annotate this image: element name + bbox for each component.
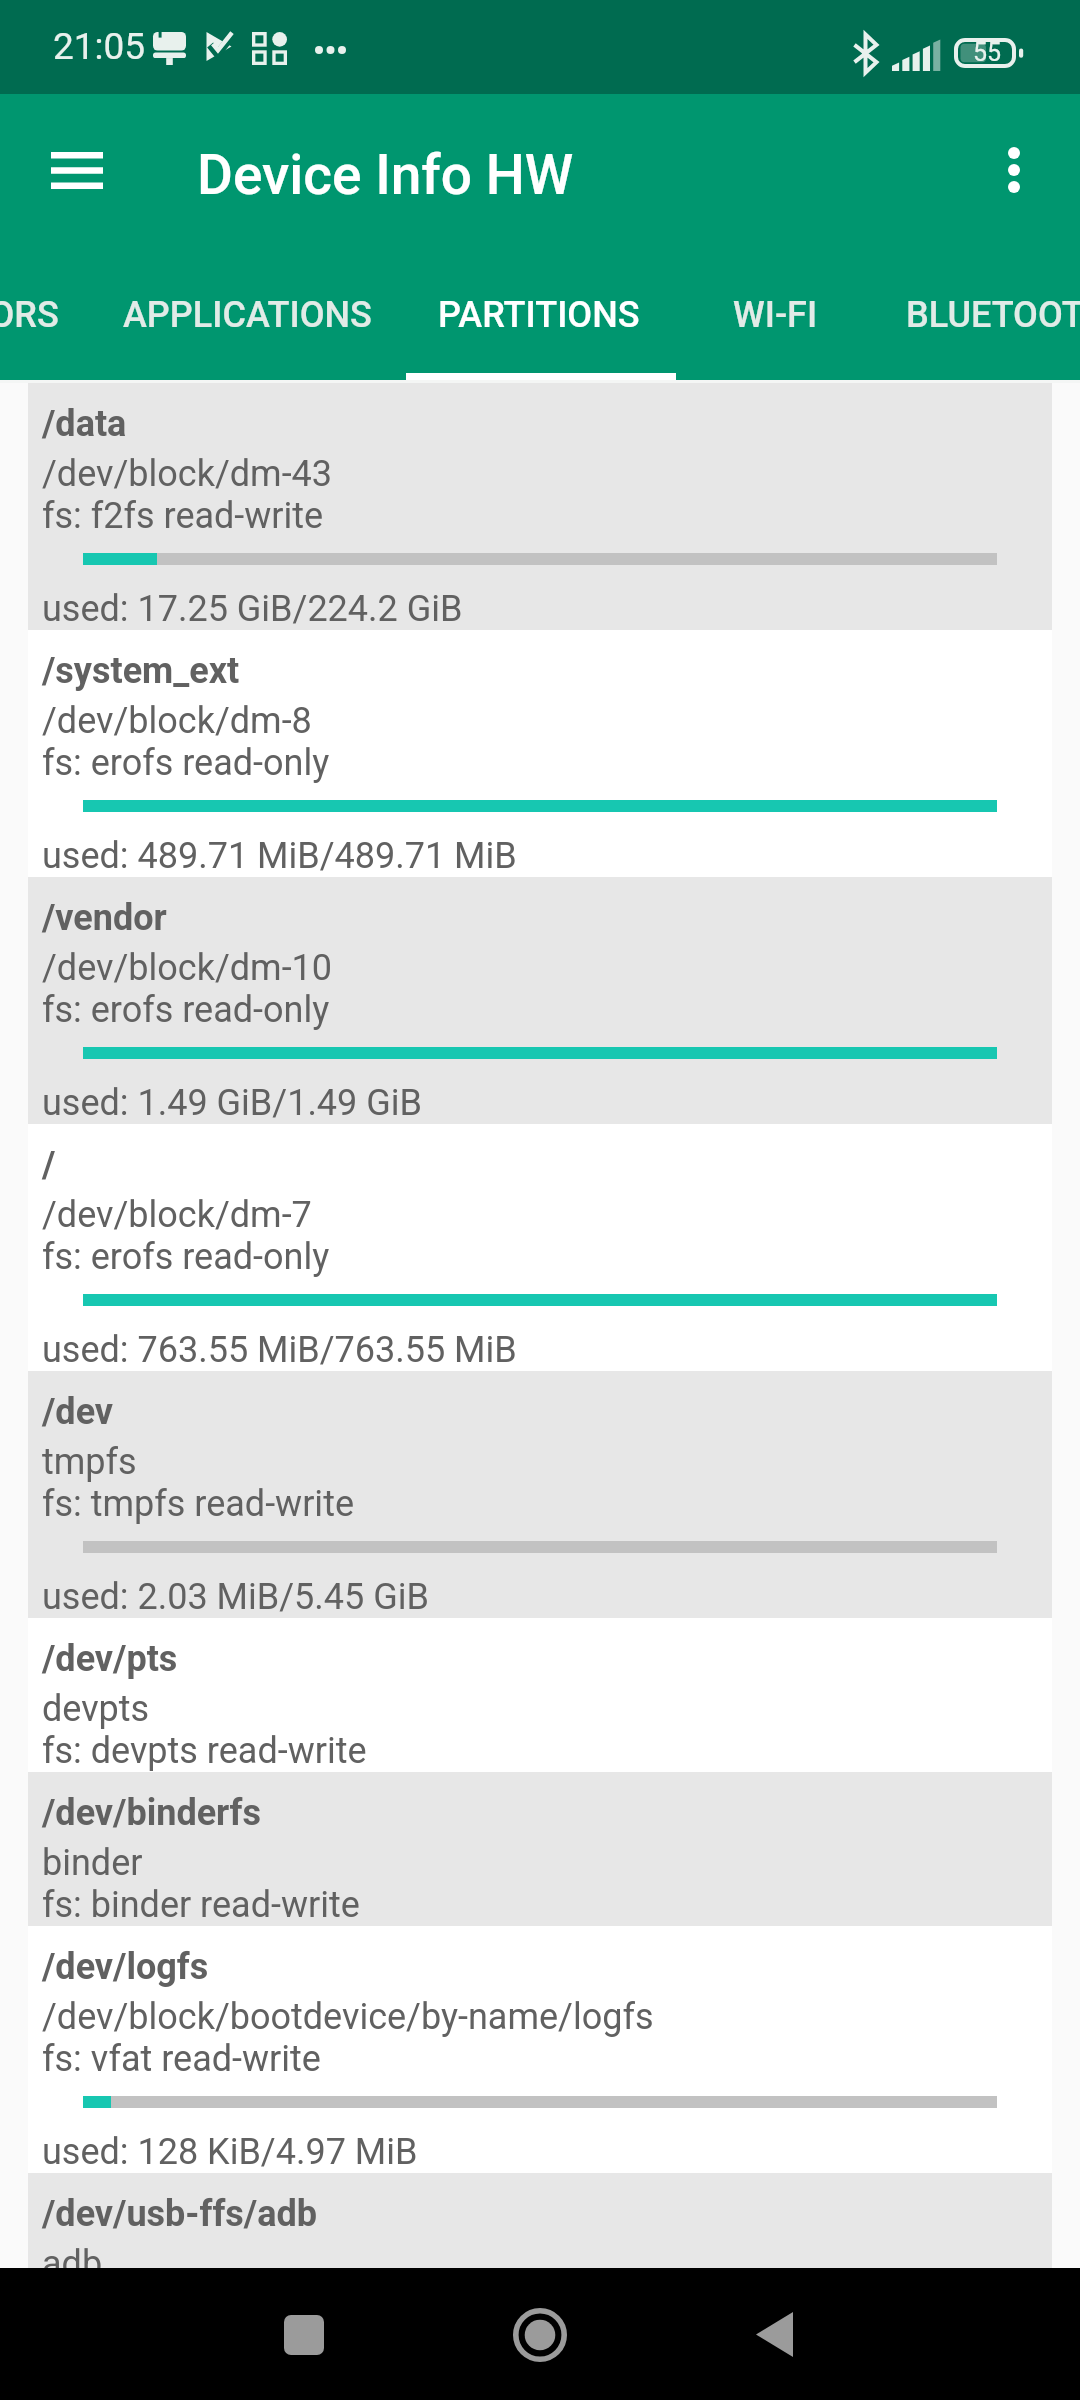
staticText: /dev/pts (42, 1638, 178, 1680)
button[interactable]: /dev/pts (28, 1618, 1052, 1772)
staticText: used: 2.03 MiB/5.45 GiB (42, 1576, 429, 1618)
staticText: PARTITIONS (438, 294, 640, 336)
staticText: /dev/block/dm-8 (42, 700, 312, 742)
staticText: binder (42, 1842, 143, 1884)
staticText: / (42, 1144, 56, 1186)
button[interactable]: Recent apps (204, 2268, 404, 2400)
staticText: SENSORS (0, 294, 59, 336)
staticText: used: 489.71 MiB/489.71 MiB (42, 835, 517, 877)
staticText: fs: tmpfs read-write (42, 1483, 354, 1525)
button[interactable]: /dev/binderfs (28, 1772, 1052, 1926)
button[interactable]: /vendor (28, 877, 1052, 1124)
button[interactable]: /dev/usb-ffs/adb (28, 2173, 1052, 2268)
staticText: used: 1.49 GiB/1.49 GiB (42, 1082, 422, 1124)
staticText: /dev/binderfs (42, 1792, 261, 1834)
staticText: /dev (42, 1391, 114, 1433)
staticText: fs: binder read-write (42, 1884, 360, 1926)
staticText: Device Info HW (197, 143, 574, 207)
staticText: fs: erofs read-only (42, 989, 330, 1031)
staticText: devpts (42, 1688, 150, 1730)
staticText: /dev/block/dm-43 (42, 453, 333, 495)
staticText: tmpfs (42, 1441, 137, 1483)
staticText: /dev/block/dm-7 (42, 1194, 312, 1236)
staticText: 55 (973, 38, 1002, 67)
button[interactable]: APPLICATIONS (89, 255, 406, 380)
button[interactable]: WI-FI (676, 255, 875, 380)
staticText: /system_ext (42, 650, 240, 692)
staticText: fs: erofs read-only (42, 742, 330, 784)
staticText: fs: f2fs read-write (42, 495, 324, 537)
staticText: /data (42, 403, 127, 445)
button[interactable]: SENSORS (0, 255, 91, 380)
staticText: BLUETOOTH (906, 294, 1080, 336)
staticText: APPLICATIONS (123, 294, 372, 336)
staticText: used: 763.55 MiB/763.55 MiB (42, 1329, 517, 1371)
staticText: 21:05 (53, 25, 146, 68)
button[interactable]: Home (440, 2268, 640, 2400)
button[interactable]: /dev (28, 1371, 1052, 1618)
staticText: adb (42, 2243, 103, 2268)
button[interactable]: Back (674, 2268, 874, 2400)
button[interactable]: More options (962, 118, 1066, 222)
button[interactable]: / (28, 1124, 1052, 1371)
staticText: fs: erofs read-only (42, 1236, 330, 1278)
staticText: /dev/usb-ffs/adb (42, 2193, 317, 2235)
staticText: used: 128 KiB/4.97 MiB (42, 2131, 418, 2173)
staticText: /dev/block/dm-10 (42, 947, 333, 989)
staticText: /dev/block/bootdevice/by-name/logfs (42, 1996, 654, 2038)
staticText: WI-FI (733, 294, 818, 336)
button[interactable]: /dev/logfs (28, 1926, 1052, 2173)
staticText: fs: devpts read-write (42, 1730, 367, 1772)
staticText: fs: vfat read-write (42, 2038, 321, 2080)
staticText: /dev/logfs (42, 1946, 209, 1988)
staticText: /vendor (42, 897, 167, 939)
button[interactable]: /data (28, 383, 1052, 630)
button[interactable]: Open navigation drawer (25, 118, 129, 222)
button[interactable]: BLUETOOTH (873, 255, 1080, 380)
button[interactable]: PARTITIONS (406, 255, 676, 380)
staticText: used: 17.25 GiB/224.2 GiB (42, 588, 463, 630)
button[interactable]: /system_ext (28, 630, 1052, 877)
